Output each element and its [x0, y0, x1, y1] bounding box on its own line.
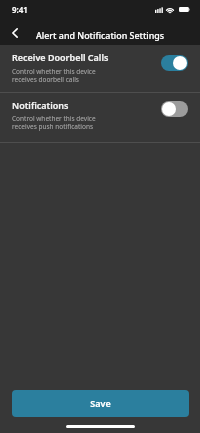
staticText: Control whether this device receives doo… [12, 67, 96, 84]
button[interactable]: Save [12, 390, 189, 417]
button[interactable]: Receive Doorbell Calls [0, 45, 200, 92]
staticText: Alert and Notification Settings [36, 29, 165, 41]
staticText: 9:41 [12, 4, 28, 15]
staticText: Control whether this device receives pus… [12, 114, 96, 131]
staticText: Receive Doorbell Calls [12, 51, 109, 63]
button[interactable]: Back [4, 24, 25, 45]
button[interactable]: Notifications [0, 93, 200, 142]
staticText: Save [90, 397, 111, 409]
staticText: Notifications [12, 99, 69, 111]
button[interactable]: Switch on [161, 55, 188, 71]
button[interactable]: Switch off [161, 101, 188, 117]
